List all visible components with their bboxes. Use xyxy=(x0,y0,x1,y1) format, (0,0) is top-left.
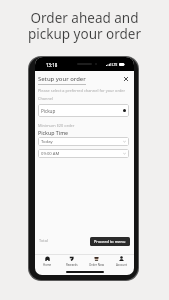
staticText: 09:00 AM xyxy=(41,151,60,157)
button[interactable]: Order Now xyxy=(84,255,109,267)
staticText: Order ahead and pickup your order xyxy=(0,9,169,43)
button[interactable]: Close xyxy=(121,74,130,83)
staticText: Pickup xyxy=(41,108,56,114)
staticText: Pickup Time xyxy=(38,129,69,136)
button[interactable]: Rewards xyxy=(59,255,84,267)
staticText: Total xyxy=(39,238,48,243)
staticText: Minimum $20 order xyxy=(38,123,75,128)
staticText: Proceed to menu xyxy=(94,239,126,244)
button[interactable]: Home xyxy=(35,255,59,267)
button[interactable]: Pickup xyxy=(38,104,129,117)
button[interactable]: Account xyxy=(109,255,134,267)
button[interactable]: Today xyxy=(38,137,129,146)
staticText: Account xyxy=(116,263,127,267)
staticText: Order Now xyxy=(89,263,104,267)
staticText: Rewards xyxy=(66,263,78,267)
staticText: Please select a preferred channel for yo… xyxy=(38,88,126,93)
staticText: Home xyxy=(43,263,52,267)
staticText: LTE xyxy=(112,63,118,67)
staticText: Today xyxy=(41,139,53,145)
staticText: Channel xyxy=(38,96,54,101)
staticText: 13:18 xyxy=(46,62,58,68)
button[interactable]: Proceed to menu xyxy=(90,237,130,246)
staticText: Setup your order xyxy=(38,75,86,83)
button[interactable]: 09:00 AM xyxy=(38,149,129,158)
